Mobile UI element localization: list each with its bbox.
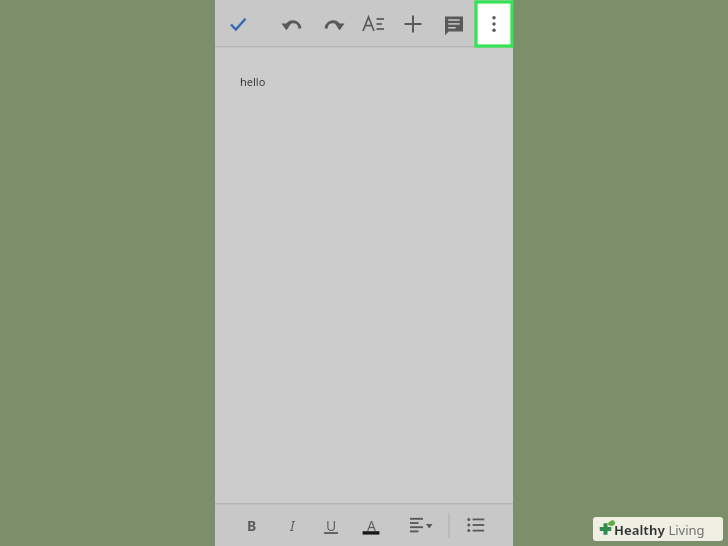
button[interactable]: Redo	[318, 8, 348, 40]
button[interactable]: Done	[223, 8, 253, 40]
button[interactable]: Text color	[357, 511, 385, 539]
staticText: A	[367, 516, 376, 535]
button[interactable]: Alignment	[403, 511, 437, 539]
button[interactable]: Italic	[278, 511, 306, 539]
button[interactable]: Undo	[278, 8, 308, 40]
button[interactable]: Insert	[398, 8, 428, 40]
button[interactable]: More options	[476, 2, 512, 46]
staticText: B	[247, 516, 257, 535]
staticText: Living	[665, 521, 705, 539]
button[interactable]: Comments	[439, 8, 469, 40]
button[interactable]: Text formatting	[358, 8, 388, 40]
staticText: U	[326, 516, 337, 535]
staticText: Healthy	[614, 521, 665, 539]
staticText: hello	[240, 74, 266, 89]
button[interactable]: Bulleted list	[462, 511, 490, 539]
button[interactable]: Underline	[317, 511, 345, 539]
button[interactable]: Bold	[238, 511, 266, 539]
staticText: I	[290, 516, 295, 535]
